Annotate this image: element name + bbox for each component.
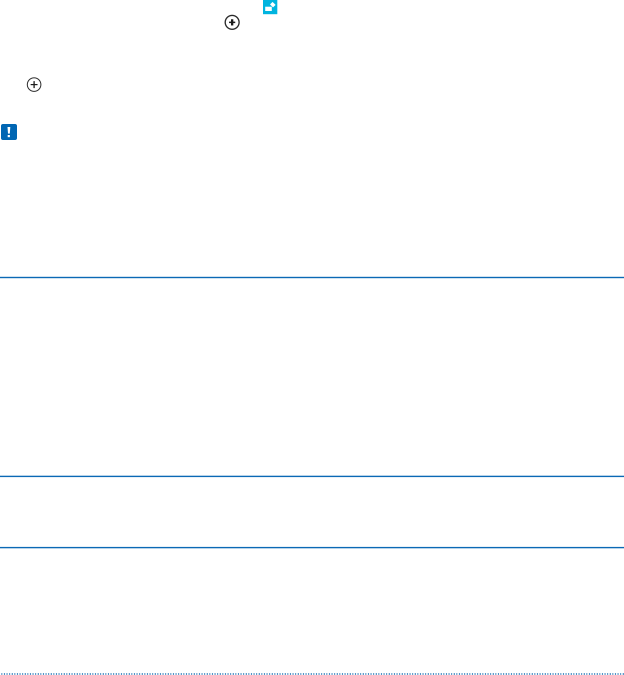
button[interactable]: Footer divider: [0, 673, 624, 675]
button[interactable]: Missing image: [263, 0, 277, 14]
button[interactable]: Warning: [1, 124, 17, 140]
button[interactable]: Expand: [27, 78, 41, 91]
button[interactable]: Expand: [225, 15, 239, 29]
